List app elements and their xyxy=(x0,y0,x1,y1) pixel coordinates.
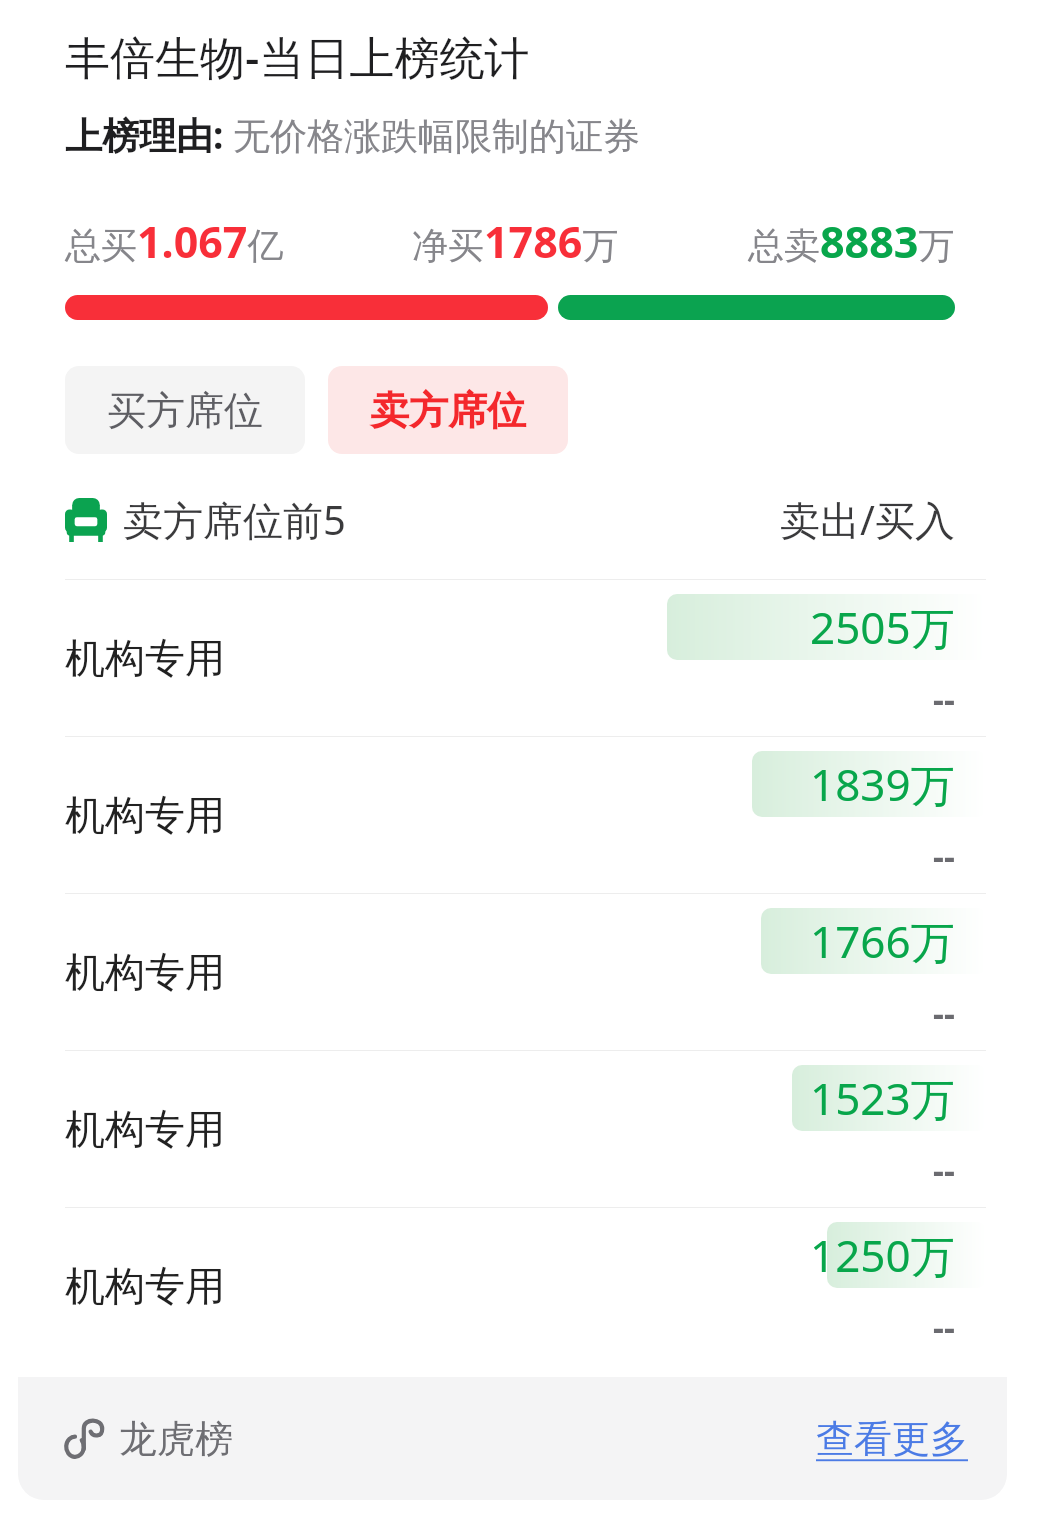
staticText: 机构专用 xyxy=(65,1261,225,1311)
button[interactable]: 卖方席位 xyxy=(328,366,568,454)
staticText: 龙虎榜 xyxy=(119,1415,233,1463)
other: 龙虎榜 xyxy=(65,1416,105,1462)
staticText: 1839万 xyxy=(810,754,955,814)
staticText: -- xyxy=(933,676,955,722)
staticText: 净买1786万 xyxy=(412,212,619,271)
button[interactable]: 龙虎榜 xyxy=(18,1377,1007,1500)
staticText: -- xyxy=(933,1147,955,1193)
staticText: 1766万 xyxy=(810,911,955,971)
staticText: 丰倍生物-当日上榜统计 xyxy=(65,26,530,87)
staticText: 总买1.067亿 xyxy=(65,212,284,271)
staticText: 机构专用 xyxy=(65,790,225,840)
staticText: -- xyxy=(933,833,955,879)
button[interactable]: 机构专用 xyxy=(33,893,986,1050)
staticText: 上榜理由: 无价格涨跌幅限制的证券 xyxy=(65,109,641,160)
staticText: -- xyxy=(933,1304,955,1350)
button[interactable]: 查看更多 xyxy=(816,1415,968,1463)
staticText: 1250万 xyxy=(810,1225,955,1285)
staticText: 卖方席位 xyxy=(370,386,526,435)
button[interactable]: 机构专用 xyxy=(33,1050,986,1207)
staticText: -- xyxy=(933,990,955,1036)
button[interactable]: 买方席位 xyxy=(65,366,305,454)
staticText: 机构专用 xyxy=(65,1104,225,1154)
staticText: 2505万 xyxy=(810,597,955,657)
staticText: 1523万 xyxy=(810,1068,955,1128)
staticText: 机构专用 xyxy=(65,947,225,997)
staticText: 买方席位 xyxy=(107,386,263,435)
staticText: 总卖8883万 xyxy=(748,212,955,271)
button[interactable]: 机构专用 xyxy=(33,736,986,893)
staticText: 机构专用 xyxy=(65,633,225,683)
button[interactable]: 机构专用 xyxy=(33,1207,986,1364)
button[interactable]: 机构专用 xyxy=(33,579,986,736)
staticText: 卖出/买入 xyxy=(780,492,955,547)
staticText: 卖方席位前5 xyxy=(123,492,346,547)
